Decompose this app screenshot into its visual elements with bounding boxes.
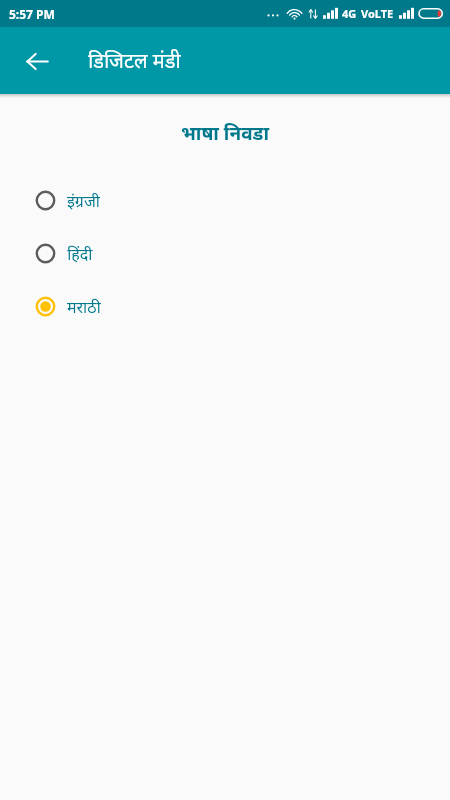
staticText: VoLTE	[361, 6, 394, 21]
button[interactable]: हिंदी	[0, 227, 450, 280]
staticText: 5:57 PM	[9, 6, 55, 22]
staticText: भाषा निवडा	[0, 120, 450, 146]
staticText: मराठी	[67, 296, 101, 318]
button[interactable]: इंग्रजी	[0, 174, 450, 227]
staticText: 4G	[342, 6, 357, 21]
staticText: हिंदी	[67, 243, 93, 265]
staticText: डिजिटल मंडी	[88, 47, 181, 74]
button[interactable]: मराठी	[0, 280, 450, 333]
button[interactable]: Back	[13, 37, 61, 85]
staticText: इंग्रजी	[67, 190, 100, 212]
